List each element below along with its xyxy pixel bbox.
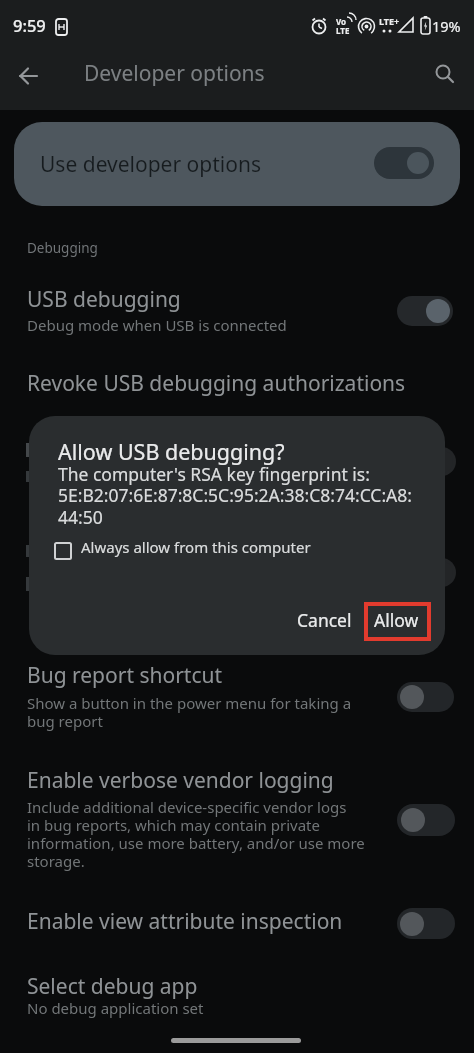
- button[interactable]: [0, 968, 474, 1028]
- staticText: The computer's RSA key fingerprint is: 5…: [58, 462, 412, 529]
- staticText: Allow USB debugging?: [58, 437, 285, 466]
- button[interactable]: [397, 804, 455, 836]
- button[interactable]: [400, 447, 456, 476]
- staticText: Always allow from this computer: [81, 537, 311, 557]
- staticText: Developer options: [84, 59, 265, 88]
- button[interactable]: [0, 658, 474, 733]
- staticText: No debug application set: [27, 998, 204, 1018]
- staticText: Allow: [374, 608, 419, 632]
- button[interactable]: [430, 59, 460, 89]
- staticText: Use developer options: [40, 150, 261, 179]
- button[interactable]: [400, 558, 456, 587]
- button[interactable]: [0, 762, 474, 867]
- button[interactable]: [397, 908, 455, 939]
- staticText: Show a button in the power menu for taki…: [27, 693, 352, 731]
- staticText: LTE+: [379, 15, 400, 27]
- staticText: Revoke USB debugging authorizations: [27, 369, 406, 398]
- button[interactable]: [0, 280, 474, 342]
- staticText: Cancel: [297, 608, 352, 632]
- button[interactable]: [49, 536, 239, 566]
- button[interactable]: Allow: [359, 602, 434, 638]
- button[interactable]: Use developer options: [14, 122, 460, 206]
- staticText: USB debugging: [27, 285, 181, 314]
- staticText: Select debug app: [27, 972, 198, 1001]
- button[interactable]: [0, 365, 474, 410]
- staticText: Debug mode when USB is connected: [27, 315, 287, 335]
- staticText: 19%: [432, 16, 461, 36]
- staticText: Vo: [336, 16, 347, 27]
- staticText: Enable view attribute inspection: [27, 907, 343, 936]
- button[interactable]: [14, 61, 44, 91]
- staticText: LTE: [336, 25, 350, 36]
- button[interactable]: Cancel: [287, 602, 362, 638]
- staticText: Include additional device-specific vendo…: [27, 797, 365, 871]
- button[interactable]: [374, 147, 434, 179]
- staticText: 9:59: [13, 14, 46, 36]
- button[interactable]: [397, 682, 454, 712]
- staticText: Enable verbose vendor logging: [27, 766, 334, 795]
- staticText: Debugging: [27, 239, 98, 257]
- button[interactable]: [0, 900, 474, 955]
- staticText: Bug report shortcut: [27, 661, 223, 690]
- button[interactable]: [397, 296, 453, 326]
